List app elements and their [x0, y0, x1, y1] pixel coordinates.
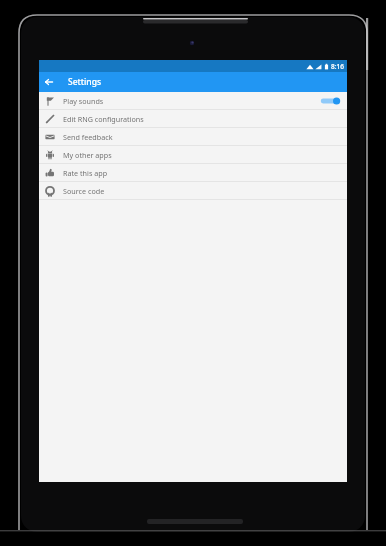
staticText: My other apps [63, 150, 112, 160]
button[interactable]: Play sounds [39, 92, 347, 110]
staticText: Edit RNG configurations [63, 114, 144, 124]
staticText: Settings [68, 76, 102, 88]
button[interactable]: Play sounds toggle [319, 95, 341, 107]
staticText: Send feedback [63, 132, 113, 142]
button[interactable]: Source code [39, 182, 347, 200]
staticText: Source code [63, 186, 105, 196]
button[interactable]: Send feedback [39, 128, 347, 146]
staticText: 8:16 [331, 62, 344, 71]
button[interactable]: Edit RNG configurations [39, 110, 347, 128]
staticText: Rate this app [63, 168, 108, 178]
staticText: Play sounds [63, 96, 104, 106]
button[interactable]: Rate this app [39, 164, 347, 182]
button[interactable]: My other apps [39, 146, 347, 164]
button[interactable]: Navigate up [39, 72, 59, 92]
